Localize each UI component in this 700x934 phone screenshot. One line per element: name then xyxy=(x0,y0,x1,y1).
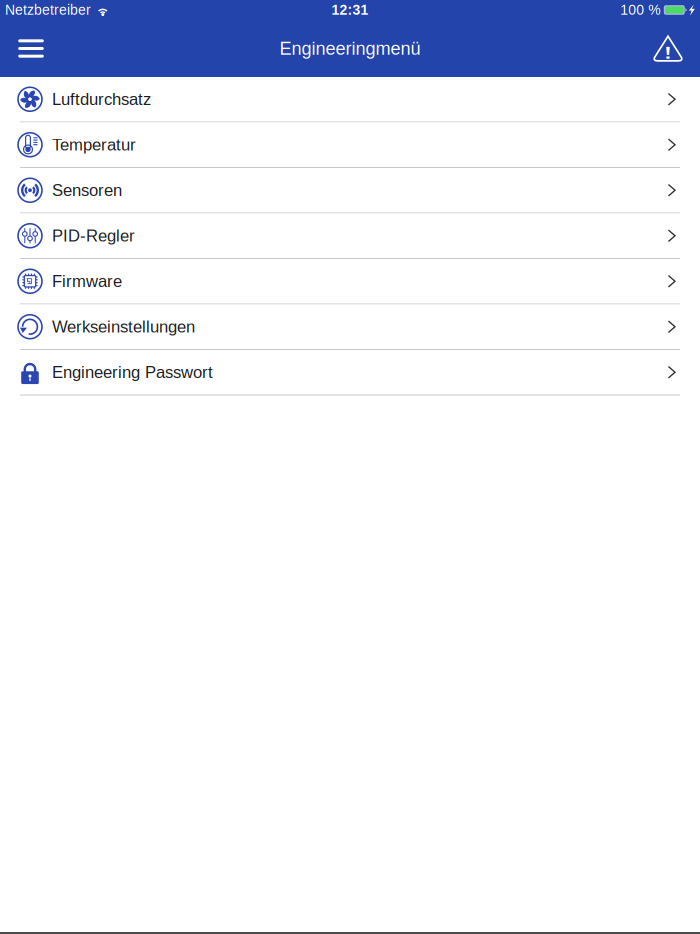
button[interactable]: Firmware xyxy=(0,259,700,304)
button[interactable]: PID-Regler xyxy=(0,213,700,259)
button[interactable]: Sensoren xyxy=(0,168,700,213)
staticText: 12:31 xyxy=(331,2,368,18)
button[interactable]: Warnungen xyxy=(645,25,691,71)
staticText: Werkseinstellungen xyxy=(52,317,195,336)
staticText: Engineering Passwort xyxy=(52,363,213,381)
button[interactable]: Luftdurchsatz xyxy=(0,77,700,122)
button[interactable]: Temperatur xyxy=(0,122,700,168)
staticText: Luftdurchsatz xyxy=(52,90,151,108)
button[interactable]: Menü xyxy=(8,25,54,71)
staticText: 100 % xyxy=(620,2,660,18)
staticText: Firmware xyxy=(52,272,122,290)
staticText: Temperatur xyxy=(52,135,136,154)
staticText: Netzbetreiber xyxy=(5,2,91,18)
staticText: Engineeringmenü xyxy=(279,38,420,59)
button[interactable]: Werkseinstellungen xyxy=(0,304,700,350)
staticText: Sensoren xyxy=(52,181,122,199)
button[interactable]: Engineering Passwort xyxy=(0,350,700,395)
staticText: PID-Regler xyxy=(52,226,135,245)
